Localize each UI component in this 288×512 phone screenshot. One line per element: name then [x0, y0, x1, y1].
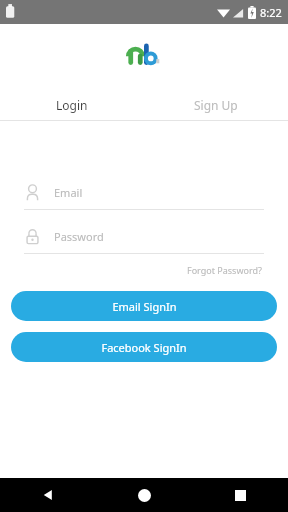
- button[interactable]: Home: [96, 478, 192, 512]
- button[interactable]: Back: [0, 478, 96, 512]
- button[interactable]: Forgot Password?: [185, 262, 264, 278]
- button[interactable]: Facebook SignIn: [11, 332, 277, 362]
- button[interactable]: Sign Up: [144, 90, 288, 120]
- staticText: 8:22: [260, 5, 282, 20]
- staticText: Email SignIn: [112, 299, 177, 314]
- staticText: Facebook SignIn: [101, 340, 187, 355]
- button[interactable]: Email SignIn: [11, 291, 277, 321]
- staticText: Password: [54, 229, 104, 244]
- staticText: Login: [56, 97, 88, 113]
- staticText: Forgot Password?: [187, 264, 262, 276]
- button[interactable]: Login: [0, 90, 144, 120]
- staticText: Email: [54, 185, 83, 200]
- button[interactable]: Recents: [192, 478, 288, 512]
- staticText: Sign Up: [194, 97, 238, 113]
